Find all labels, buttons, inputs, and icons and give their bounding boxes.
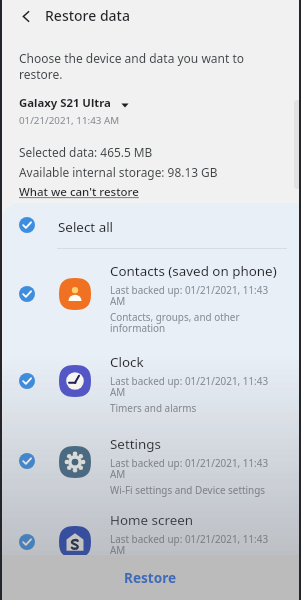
staticText: Last backed up: 01/21/2021, 11:43 AM	[110, 283, 269, 308]
staticText: Last backed up: 01/21/2021, 11:43 AM	[110, 456, 269, 481]
staticText: Restore data	[45, 6, 130, 25]
staticText: Last backed up: 01/21/2021, 11:43 AM	[110, 374, 269, 399]
staticText: Home screen	[110, 511, 194, 529]
button[interactable]: Contacts (saved on phone)	[3, 249, 301, 339]
staticText: Choose the device and data you want to r…	[19, 50, 245, 82]
staticText: Contacts (saved on phone)	[110, 262, 277, 280]
staticText: Select all	[58, 218, 114, 236]
staticText: Galaxy S21 Ultra	[19, 95, 111, 110]
staticText: Selected data: 465.5 MB	[19, 144, 153, 160]
button[interactable]: Select all	[3, 203, 301, 248]
staticText: Timers and alarms	[110, 401, 197, 414]
staticText: Available internal storage: 98.13 GB	[19, 164, 218, 180]
staticText: Settings	[110, 435, 161, 453]
button[interactable]: Settings	[3, 421, 301, 501]
staticText: Restore	[124, 568, 177, 587]
staticText: Wi-Fi settings and Device settings	[110, 483, 266, 496]
staticText: 01/21/2021, 11:43 AM	[19, 114, 120, 127]
staticText: Last backed up: 01/21/2021, 11:43 AM	[110, 532, 269, 557]
button[interactable]: Restore	[0, 555, 301, 600]
button[interactable]: Clock	[3, 339, 301, 421]
button[interactable]: Home screen	[3, 501, 301, 581]
staticText: What we can't restore	[19, 184, 139, 200]
staticText: Contacts, groups, and other information	[110, 310, 240, 335]
button[interactable]: Back	[16, 6, 36, 26]
staticText: Clock	[110, 353, 144, 371]
